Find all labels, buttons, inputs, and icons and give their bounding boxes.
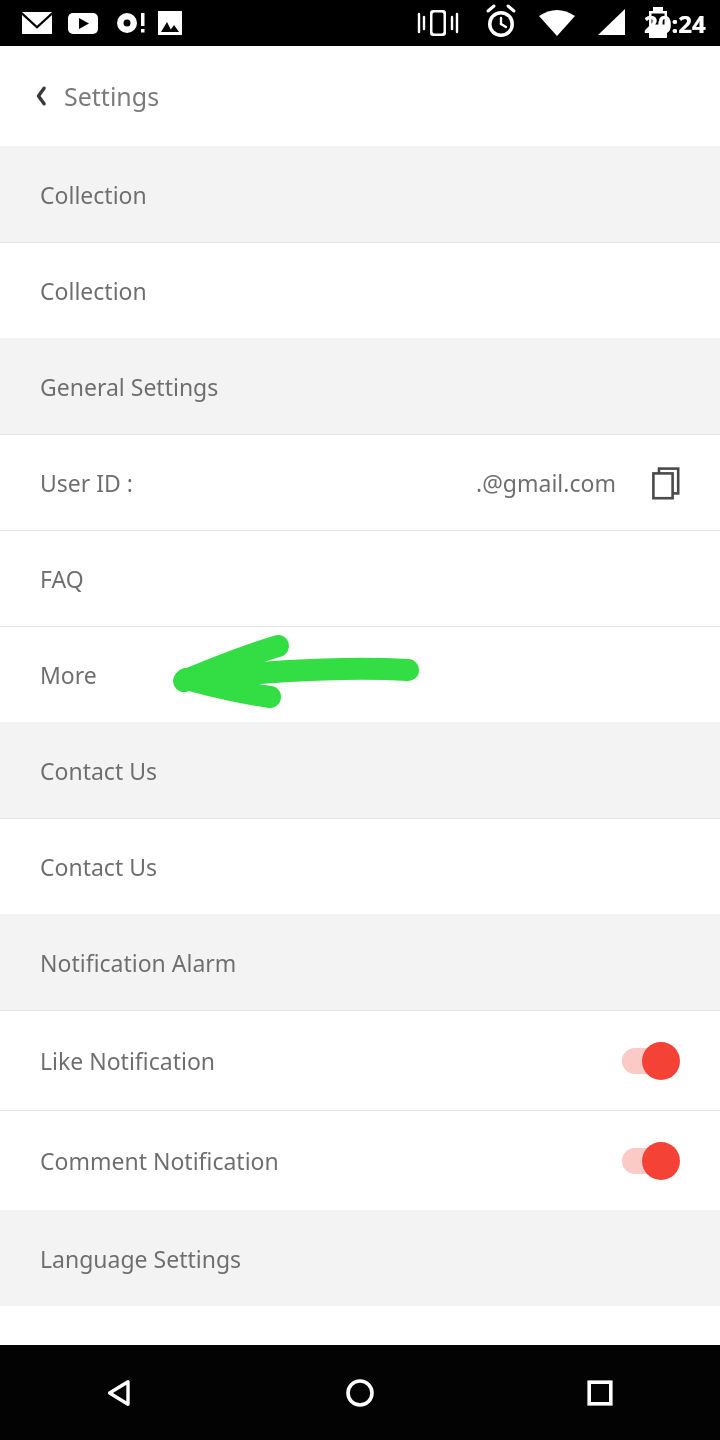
button[interactable]: Comment Notification xyxy=(0,1111,720,1210)
staticText: .@gmail.com xyxy=(476,467,616,498)
button[interactable]: More xyxy=(0,627,720,722)
staticText: Comment Notification xyxy=(40,1145,279,1176)
staticText: Contact Us xyxy=(40,755,158,786)
button[interactable]: User ID : xyxy=(0,435,720,530)
staticText: Like Notification xyxy=(40,1045,216,1076)
staticText: General Settings xyxy=(40,371,219,402)
button[interactable]: Collection xyxy=(0,243,720,338)
staticText: Collection xyxy=(40,179,147,210)
button[interactable]: Back xyxy=(0,1345,240,1440)
staticText: Collection xyxy=(40,275,147,306)
button[interactable]: Contact Us xyxy=(0,819,720,914)
staticText: 20:24 xyxy=(644,7,706,40)
button[interactable]: Home xyxy=(240,1345,480,1440)
button[interactable]: Like Notification xyxy=(0,1011,720,1110)
staticText: User ID : xyxy=(40,467,134,498)
button[interactable]: Recent apps xyxy=(480,1345,720,1440)
staticText: Settings xyxy=(64,79,160,113)
button[interactable]: Back xyxy=(22,76,62,116)
button[interactable]: Comment Notification toggle, on xyxy=(622,1139,684,1183)
button[interactable]: Copy user ID xyxy=(644,460,690,506)
staticText: Contact Us xyxy=(40,851,158,882)
staticText: FAQ xyxy=(40,563,84,594)
staticText: More xyxy=(40,659,97,690)
staticText: Notification Alarm xyxy=(40,947,237,978)
staticText: Language Settings xyxy=(40,1243,242,1274)
button[interactable]: FAQ xyxy=(0,531,720,626)
button[interactable]: Like Notification toggle, on xyxy=(622,1039,684,1083)
